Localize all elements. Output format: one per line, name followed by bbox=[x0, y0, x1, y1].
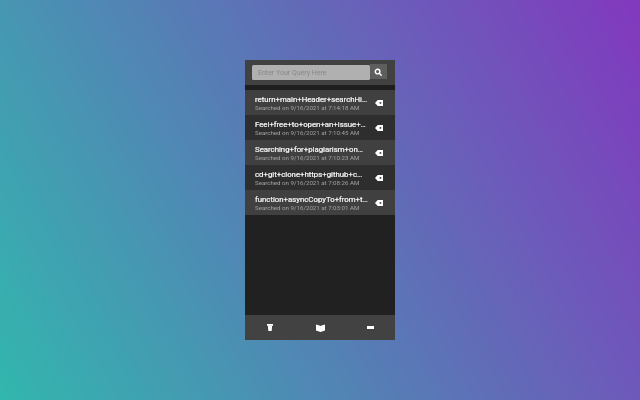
button[interactable]: cd+git+clone+https+github+c… bbox=[245, 165, 395, 190]
button[interactable]: Remove bbox=[362, 90, 395, 115]
staticText: Feel+free+to+open+an+issue+… bbox=[255, 120, 366, 129]
staticText: return+main+Header+searchHi… bbox=[255, 95, 368, 104]
button[interactable]: Remove bbox=[362, 140, 395, 165]
button[interactable]: Search bbox=[370, 64, 387, 79]
button[interactable]: return+main+Header+searchHi… bbox=[245, 90, 395, 115]
staticText: Searched on 9/16/2021 at 7:10:23 AM bbox=[255, 154, 360, 161]
staticText: Searched on 9/16/2021 at 7:14:18 AM bbox=[255, 104, 360, 111]
staticText: Enter Your Query Here bbox=[258, 69, 327, 77]
staticText: Searched on 9/16/2021 at 7:03:01 AM bbox=[255, 204, 360, 211]
button[interactable]: More options bbox=[345, 315, 395, 340]
button[interactable]: Searching+for+plagiarism+on… bbox=[245, 140, 395, 165]
staticText: Searched on 9/16/2021 at 7:08:26 AM bbox=[255, 179, 360, 186]
staticText: Searched on 9/16/2021 at 7:10:45 AM bbox=[255, 129, 360, 136]
staticText: function+asyncCopyTo+from+t… bbox=[255, 195, 368, 204]
button[interactable]: Remove bbox=[362, 115, 395, 140]
staticText: cd+git+clone+https+github+c… bbox=[255, 170, 363, 179]
button[interactable]: Guide bbox=[295, 315, 345, 340]
button[interactable]: Remove bbox=[362, 165, 395, 190]
staticText: Searching+for+plagiarism+on… bbox=[255, 145, 363, 154]
button[interactable]: Clear history bbox=[245, 315, 295, 340]
button[interactable]: Feel+free+to+open+an+issue+… bbox=[245, 115, 395, 140]
button[interactable]: function+asyncCopyTo+from+t… bbox=[245, 190, 395, 215]
button[interactable]: Remove bbox=[362, 190, 395, 215]
button[interactable]: Enter Your Query Here bbox=[252, 65, 370, 80]
